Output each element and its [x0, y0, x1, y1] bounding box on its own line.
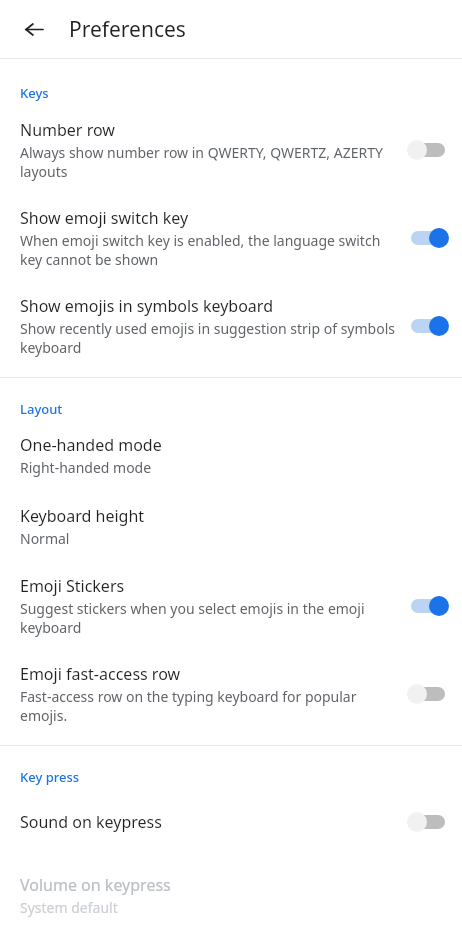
staticText: Key press	[20, 768, 80, 786]
staticText: Preferences	[69, 15, 186, 44]
button[interactable]	[402, 130, 454, 170]
button[interactable]	[402, 674, 454, 714]
button[interactable]: Emoji Stickers	[0, 562, 462, 650]
button[interactable]: Show emoji switch key	[0, 194, 462, 282]
button[interactable]	[402, 218, 454, 258]
staticText: Right-handed mode	[20, 458, 152, 477]
staticText: Emoji Stickers	[20, 575, 125, 597]
staticText: Show recently used emojis in suggestion …	[20, 319, 396, 357]
staticText: Layout	[20, 400, 63, 418]
staticText: One-handed mode	[20, 434, 162, 456]
staticText: Show emoji switch key	[20, 207, 189, 229]
staticText: System default	[20, 898, 118, 917]
staticText: Number row	[20, 119, 115, 141]
staticText: Sound on keypress	[20, 811, 162, 833]
staticText: Suggest stickers when you select emojis …	[20, 599, 396, 637]
button[interactable]: Sound on keypress	[0, 786, 462, 858]
button[interactable]: Keyboard height	[0, 491, 462, 562]
staticText: Emoji fast-access row	[20, 663, 181, 685]
button[interactable]	[402, 802, 454, 842]
staticText: Keyboard height	[20, 505, 145, 527]
button[interactable]	[402, 306, 454, 346]
button[interactable]: Number row	[0, 102, 462, 194]
button[interactable]: Show emojis in symbols keyboard	[0, 282, 462, 377]
button[interactable]: Back	[12, 7, 56, 51]
staticText: Keys	[20, 84, 49, 102]
staticText: Always show number row in QWERTY, QWERTZ…	[20, 143, 396, 181]
button[interactable]	[402, 586, 454, 626]
staticText: When emoji switch key is enabled, the la…	[20, 231, 396, 269]
staticText: Normal	[20, 529, 70, 548]
button[interactable]: Emoji fast-access row	[0, 650, 462, 745]
staticText: Show emojis in symbols keyboard	[20, 295, 273, 317]
button[interactable]: Volume on keypress	[0, 858, 462, 931]
button[interactable]: One-handed mode	[0, 418, 462, 491]
staticText: Volume on keypress	[20, 874, 171, 896]
staticText: Fast-access row on the typing keyboard f…	[20, 687, 396, 725]
